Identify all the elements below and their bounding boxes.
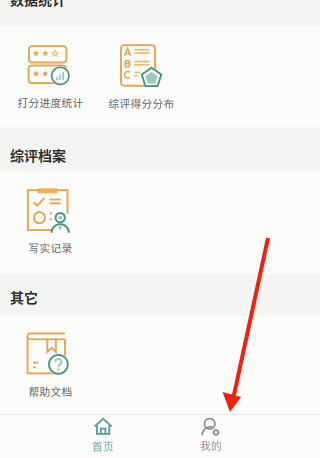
staticText: 综评得分分布 [108,95,174,111]
staticText: 帮助文档 [28,383,72,399]
staticText: 数据统计 [10,0,66,9]
staticText: 打分进度统计 [17,95,83,110]
button[interactable]: 首页 [51,415,155,458]
button[interactable]: 综评得分分布 [96,26,187,127]
staticText: 其它 [10,287,38,307]
button[interactable]: 打分进度统计 [5,26,96,127]
button[interactable]: 我的 [155,415,267,458]
staticText: 写实记录 [28,240,72,255]
button[interactable]: 写实记录 [5,171,96,274]
staticText: 综评档案 [10,145,66,165]
staticText: 我的 [200,437,222,453]
staticText: 首页 [92,438,114,453]
button[interactable]: 帮助文档 [5,316,96,414]
